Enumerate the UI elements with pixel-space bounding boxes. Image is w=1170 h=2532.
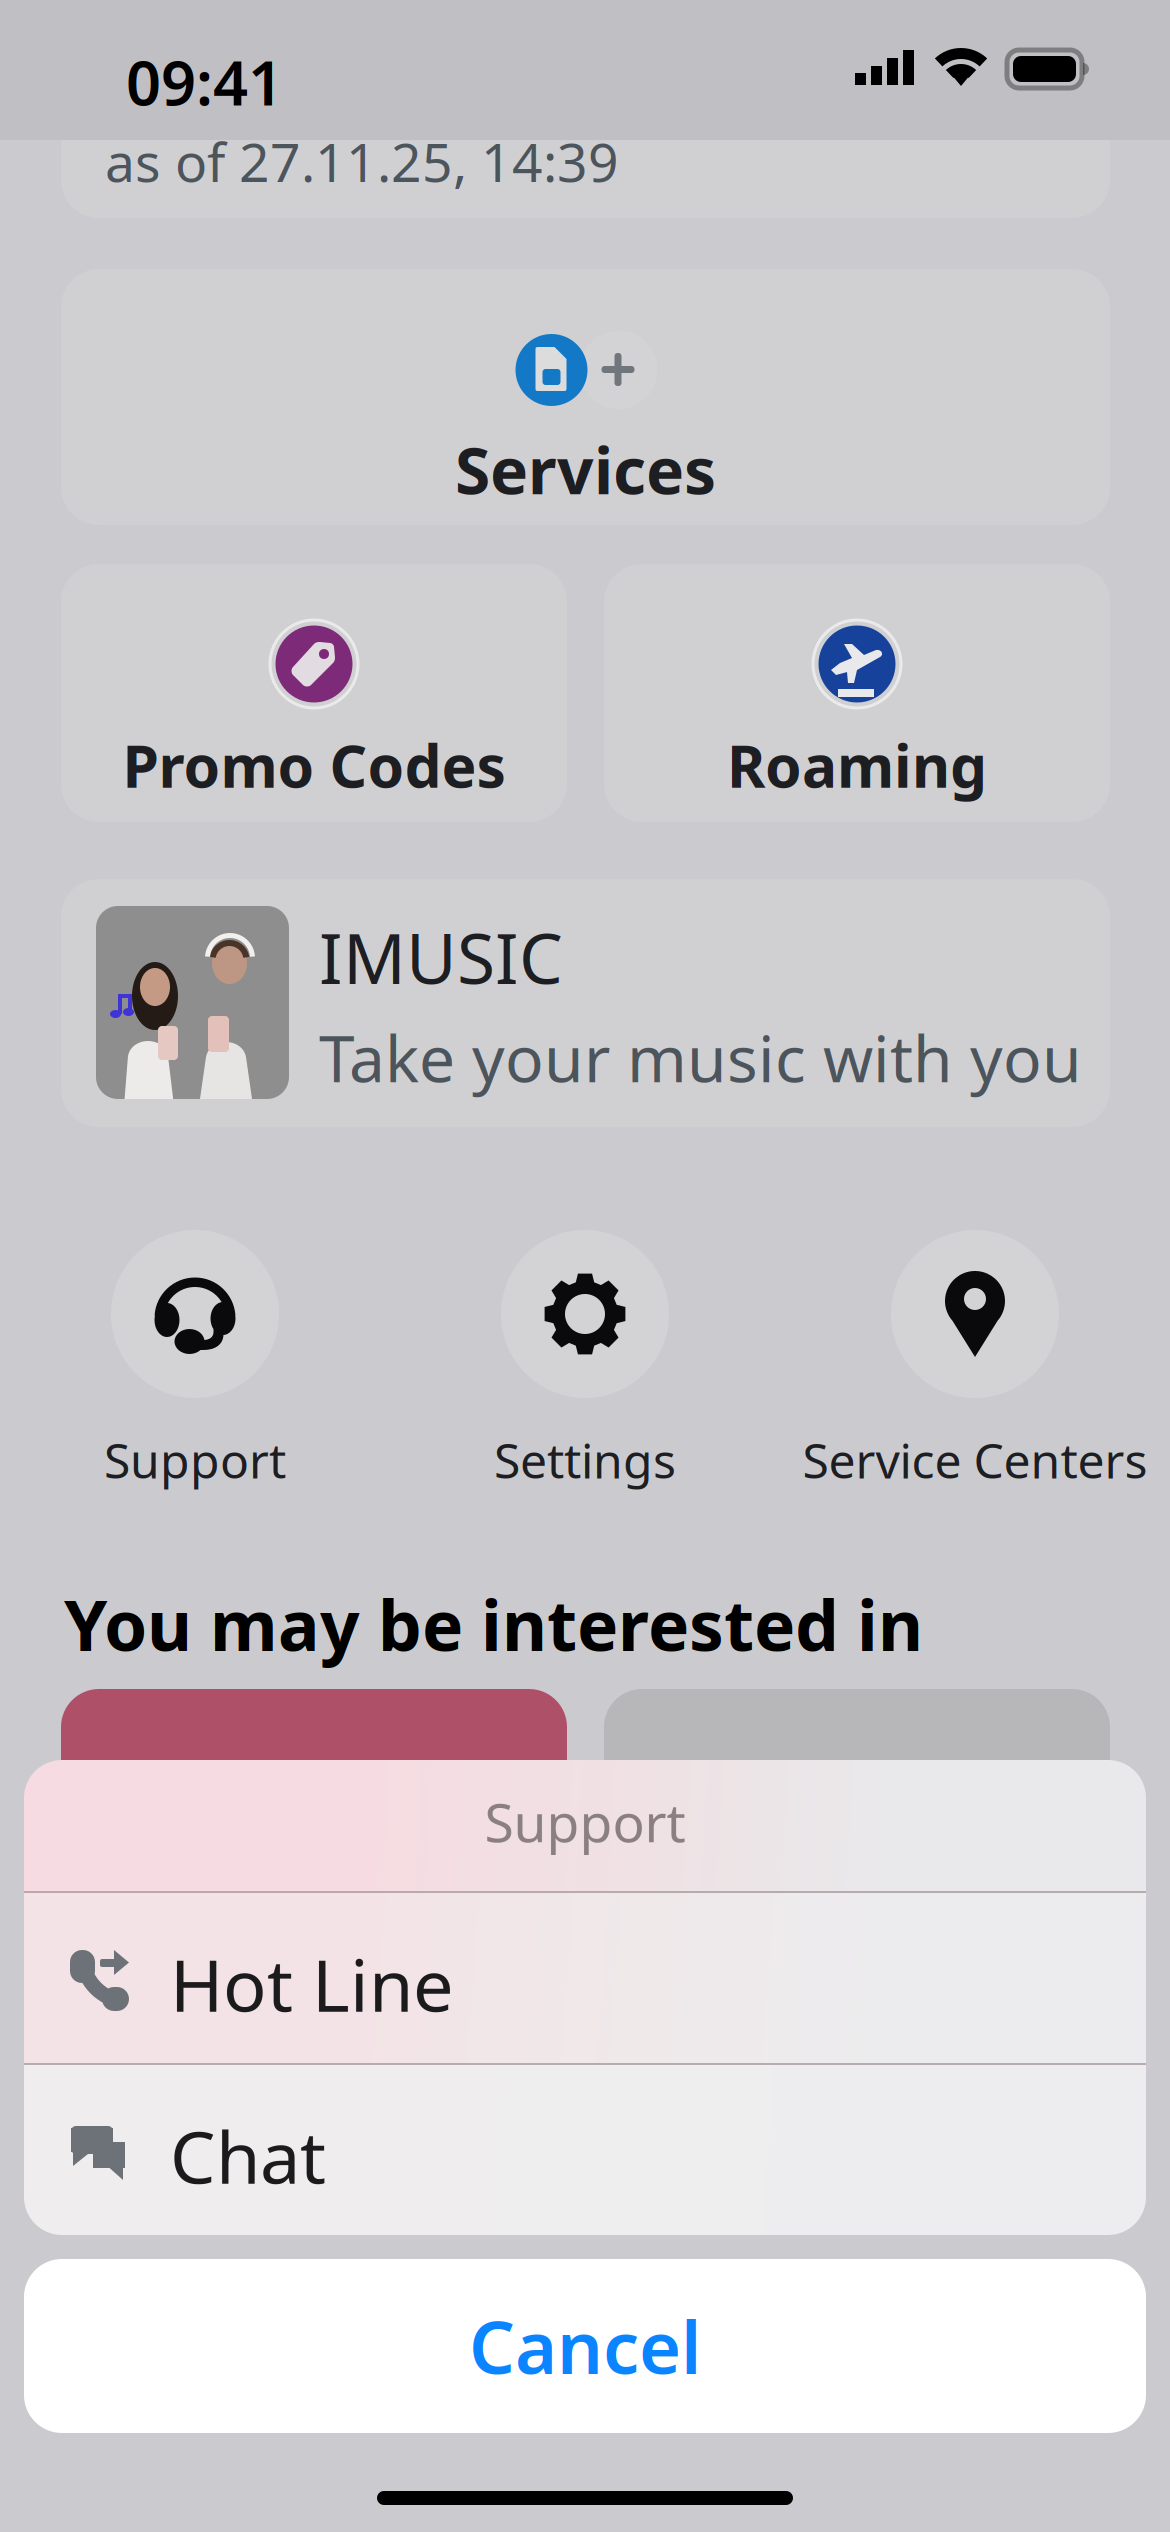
button[interactable]: Services — [61, 269, 1110, 525]
button[interactable]: IMUSIC — [61, 879, 1110, 1127]
staticText: Settings — [494, 1428, 676, 1492]
staticText: Cancel — [469, 2298, 701, 2394]
button[interactable]: Service Centers — [780, 1230, 1170, 1500]
button[interactable]: Promo Codes — [61, 564, 567, 822]
staticText: as of 27.11.25, 14:39 — [105, 126, 619, 197]
button[interactable]: Cancel — [24, 2259, 1146, 2433]
staticText: Hot Line — [170, 1936, 454, 2032]
button[interactable]: Settings — [390, 1230, 780, 1500]
staticText: IMUSIC — [319, 911, 563, 1003]
staticText: You may be interested in — [64, 1578, 923, 1670]
staticText: Promo Codes — [122, 726, 505, 804]
button[interactable]: Chat — [24, 2065, 1146, 2235]
staticText: Take your music with you — [319, 1015, 1082, 1100]
staticText: Chat — [170, 2108, 326, 2204]
staticText: Services — [455, 427, 716, 512]
button[interactable]: Support — [0, 1230, 390, 1500]
staticText: Roaming — [727, 726, 987, 804]
button[interactable]: Hot Line — [24, 1893, 1146, 2063]
staticText: 09:41 — [126, 41, 283, 122]
staticText: Support — [484, 1786, 685, 1857]
staticText: Service Centers — [802, 1428, 1147, 1492]
staticText: Support — [104, 1428, 286, 1492]
button[interactable]: Roaming — [604, 564, 1110, 822]
